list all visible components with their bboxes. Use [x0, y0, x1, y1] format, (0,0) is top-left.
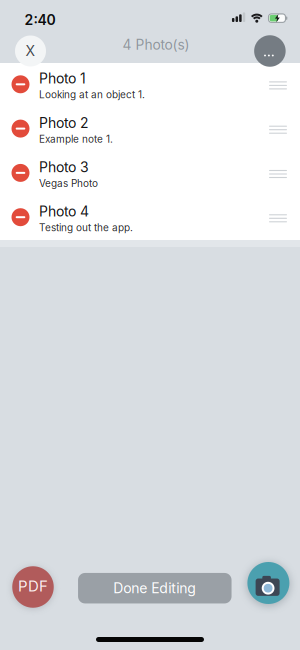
staticText: 4 Photo(s)	[122, 36, 189, 53]
button[interactable]: Delete Photo 3	[11, 164, 29, 182]
staticText: PDF	[18, 577, 48, 595]
staticText: Testing out the app.	[39, 222, 133, 234]
staticText: Example note 1.	[39, 133, 113, 145]
staticText: Photo 3	[39, 159, 89, 175]
button[interactable]: Export PDF	[12, 566, 54, 608]
staticText: X	[25, 42, 35, 59]
staticText: Vegas Photo	[39, 177, 98, 189]
button[interactable]: Delete Photo 2	[11, 120, 29, 138]
button[interactable]: Done Editing	[78, 573, 232, 603]
button[interactable]: Camera	[247, 562, 289, 604]
button[interactable]: Delete Photo 1	[11, 75, 29, 93]
staticText: Photo 1	[39, 70, 86, 87]
staticText: Looking at an object 1.	[39, 89, 145, 101]
staticText: Photo 4	[39, 203, 89, 220]
button[interactable]: Delete Photo 4	[11, 208, 29, 226]
staticText: 2:40	[24, 11, 55, 28]
staticText: Done Editing	[113, 580, 196, 597]
button[interactable]: More options	[254, 35, 286, 67]
button[interactable]: Close	[15, 35, 46, 66]
staticText: Photo 2	[39, 114, 89, 131]
